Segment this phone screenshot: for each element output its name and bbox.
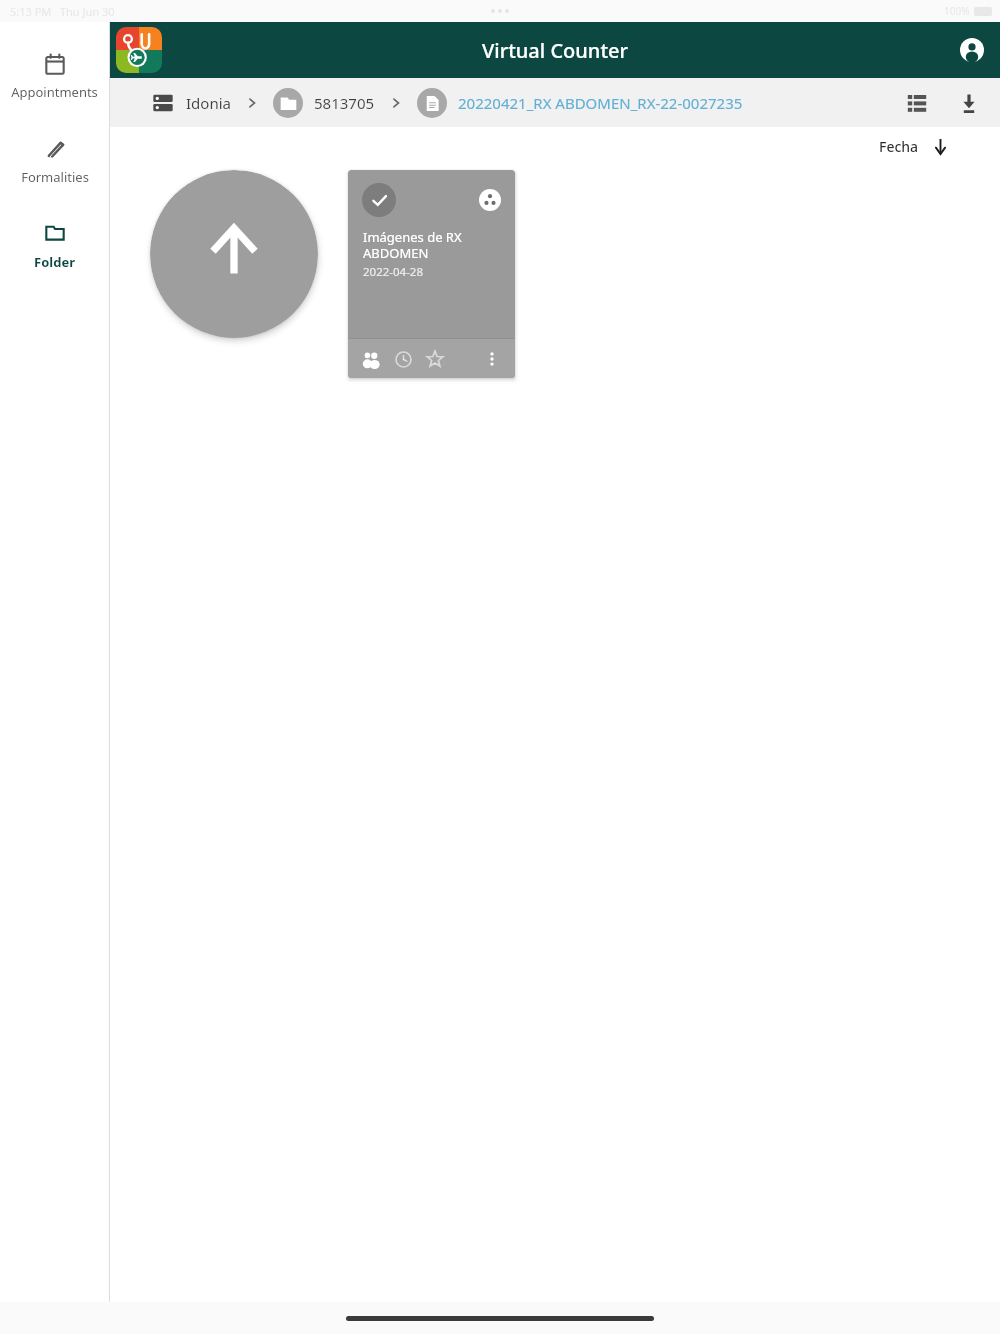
button[interactable]: Shared [479,189,501,211]
button[interactable]: Appointments [0,46,109,105]
button[interactable]: Share with people [359,347,383,371]
button[interactable]: Folder [0,216,109,275]
button[interactable]: App logo [116,27,162,73]
button[interactable]: Download [952,86,986,120]
button[interactable]: List view [900,86,934,120]
staticText: 20220421_RX ABDOMEN_RX-22-0027235 [458,93,743,113]
staticText: 2022-04-28 [363,264,424,280]
staticText: Imágenes de RX ABDOMEN [363,228,500,261]
staticText: Virtual Counter [482,37,628,64]
staticText: Fecha [879,137,919,156]
staticText: Appointments [11,83,98,101]
button[interactable]: Formalities [0,131,109,190]
button[interactable]: Account [954,32,990,68]
staticText: Idonia [186,93,231,113]
staticText: Folder [34,253,75,271]
button[interactable]: Selected [348,170,515,378]
staticText: 5:13 PM Thu Jun 30 [10,4,115,19]
button[interactable]: Upload [150,170,318,338]
button[interactable]: Selected [362,183,396,217]
button[interactable]: Favorite [423,347,447,371]
button[interactable]: 5813705 [273,88,375,118]
button[interactable]: More options [480,347,504,371]
button[interactable]: 20220421_RX ABDOMEN_RX-22-0027235 [417,88,743,118]
staticText: 100% [944,4,970,18]
staticText: 5813705 [314,93,375,113]
staticText: Formalities [21,168,89,186]
button[interactable]: Fecha [873,131,956,162]
button[interactable]: Idonia [152,92,231,114]
button[interactable]: History [391,347,415,371]
